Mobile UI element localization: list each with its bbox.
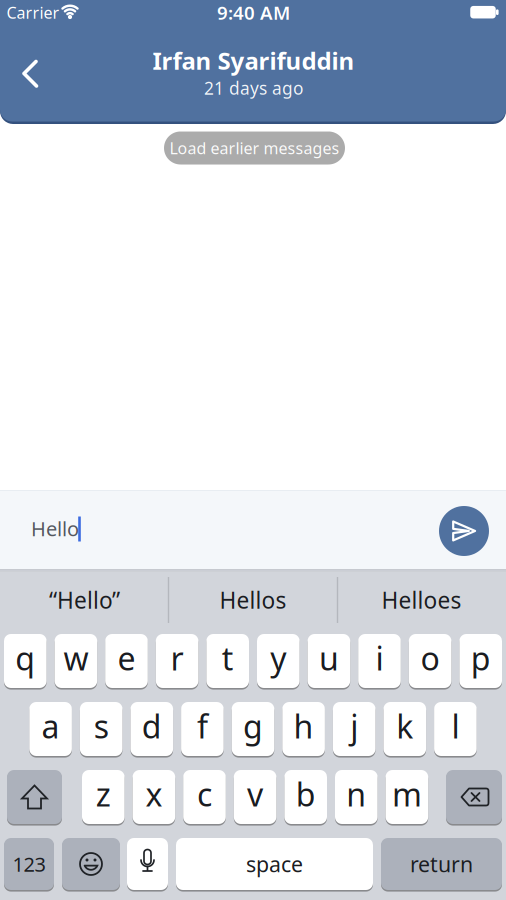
button[interactable]: d [130, 702, 173, 756]
button[interactable]: b [284, 770, 327, 824]
staticText: h [294, 705, 314, 747]
button[interactable]: g [232, 702, 274, 756]
button[interactable]: Back [0, 0, 60, 110]
staticText: r [171, 637, 184, 679]
button[interactable]: i [358, 634, 401, 688]
button[interactable]: q [4, 634, 47, 688]
button[interactable]: l [434, 702, 477, 756]
staticText: s [94, 705, 109, 747]
staticText: space [246, 850, 303, 878]
staticText: i [375, 637, 383, 679]
button[interactable]: return [381, 838, 502, 890]
staticText: x [145, 773, 162, 815]
button[interactable]: n [335, 770, 378, 824]
staticText: z [96, 773, 111, 815]
button[interactable]: s [80, 702, 122, 756]
staticText: p [471, 637, 491, 679]
staticText: Load earlier messages [169, 137, 339, 159]
button[interactable]: Helloes [341, 575, 501, 625]
staticText: u [319, 637, 339, 679]
staticText: Helloes [381, 585, 461, 615]
button[interactable]: k [383, 702, 426, 756]
button[interactable]: 123 [4, 838, 54, 890]
button[interactable]: Dictate [127, 838, 168, 890]
staticText: Irfan Syarifuddin [152, 45, 354, 76]
button[interactable]: Delete [446, 770, 502, 824]
button[interactable]: v [234, 770, 276, 824]
staticText: c [197, 773, 212, 815]
staticText: b [296, 773, 316, 815]
button[interactable]: x [133, 770, 175, 824]
staticText: 123 [12, 851, 45, 877]
staticText: return [410, 850, 473, 878]
staticText: q [15, 637, 35, 679]
staticText: 21 days ago [204, 76, 303, 99]
button[interactable]: space [176, 838, 373, 890]
staticText: m [392, 773, 422, 815]
button[interactable]: m [386, 770, 428, 824]
button[interactable]: Shift [7, 770, 62, 824]
staticText: o [421, 637, 440, 679]
staticText: 9:40 AM [217, 0, 290, 25]
button[interactable]: w [55, 634, 97, 688]
staticText: d [142, 705, 162, 747]
button[interactable]: f [181, 702, 224, 756]
staticText: f [197, 705, 208, 747]
button[interactable]: t [206, 634, 249, 688]
button[interactable]: Send [439, 506, 489, 556]
staticText: a [42, 705, 60, 747]
staticText: w [63, 637, 88, 679]
button[interactable]: r [156, 634, 198, 688]
button[interactable]: “Hello” [4, 575, 164, 625]
staticText: k [396, 705, 413, 747]
button[interactable]: Hellos [173, 575, 333, 625]
staticText: t [222, 637, 234, 679]
staticText: v [247, 773, 263, 815]
button[interactable]: Load earlier messages [164, 131, 345, 164]
button[interactable]: c [183, 770, 226, 824]
staticText: l [451, 705, 459, 747]
button[interactable]: h [282, 702, 325, 756]
button[interactable]: e [105, 634, 148, 688]
button[interactable]: j [333, 702, 375, 756]
button[interactable]: a [29, 702, 72, 756]
button[interactable]: o [409, 634, 451, 688]
staticText: Carrier [6, 2, 59, 23]
staticText: y [270, 637, 286, 679]
staticText: Hellos [219, 585, 286, 615]
staticText: j [350, 705, 358, 747]
button[interactable]: Emoji [62, 838, 120, 890]
button[interactable]: y [257, 634, 300, 688]
staticText: “Hello” [49, 585, 120, 615]
button[interactable]: u [308, 634, 350, 688]
button[interactable]: p [459, 634, 502, 688]
staticText: g [243, 705, 263, 747]
staticText: n [346, 773, 366, 815]
staticText: e [117, 637, 135, 679]
button[interactable]: z [82, 770, 125, 824]
staticText: Hello [31, 515, 79, 542]
